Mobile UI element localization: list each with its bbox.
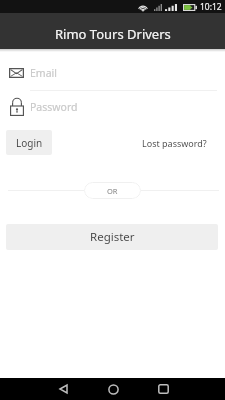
staticText: Lost password? (142, 137, 207, 149)
staticText: Rimo Tours Drivers (55, 25, 171, 43)
button[interactable]: Home (88, 378, 138, 400)
staticText: Register (90, 229, 135, 245)
staticText: 10:12 (200, 1, 222, 13)
button[interactable]: Email (0, 64, 225, 82)
staticText: Login (16, 136, 43, 150)
staticText: Email (30, 66, 57, 80)
staticText: OR (107, 186, 118, 196)
button[interactable]: Login (6, 130, 52, 155)
button[interactable]: Back (38, 378, 88, 400)
button[interactable]: Password (0, 98, 225, 116)
staticText: Password (30, 100, 78, 114)
button[interactable]: Recent apps (138, 378, 188, 400)
button[interactable]: Register (6, 224, 218, 250)
button[interactable]: Lost password? (136, 132, 213, 154)
